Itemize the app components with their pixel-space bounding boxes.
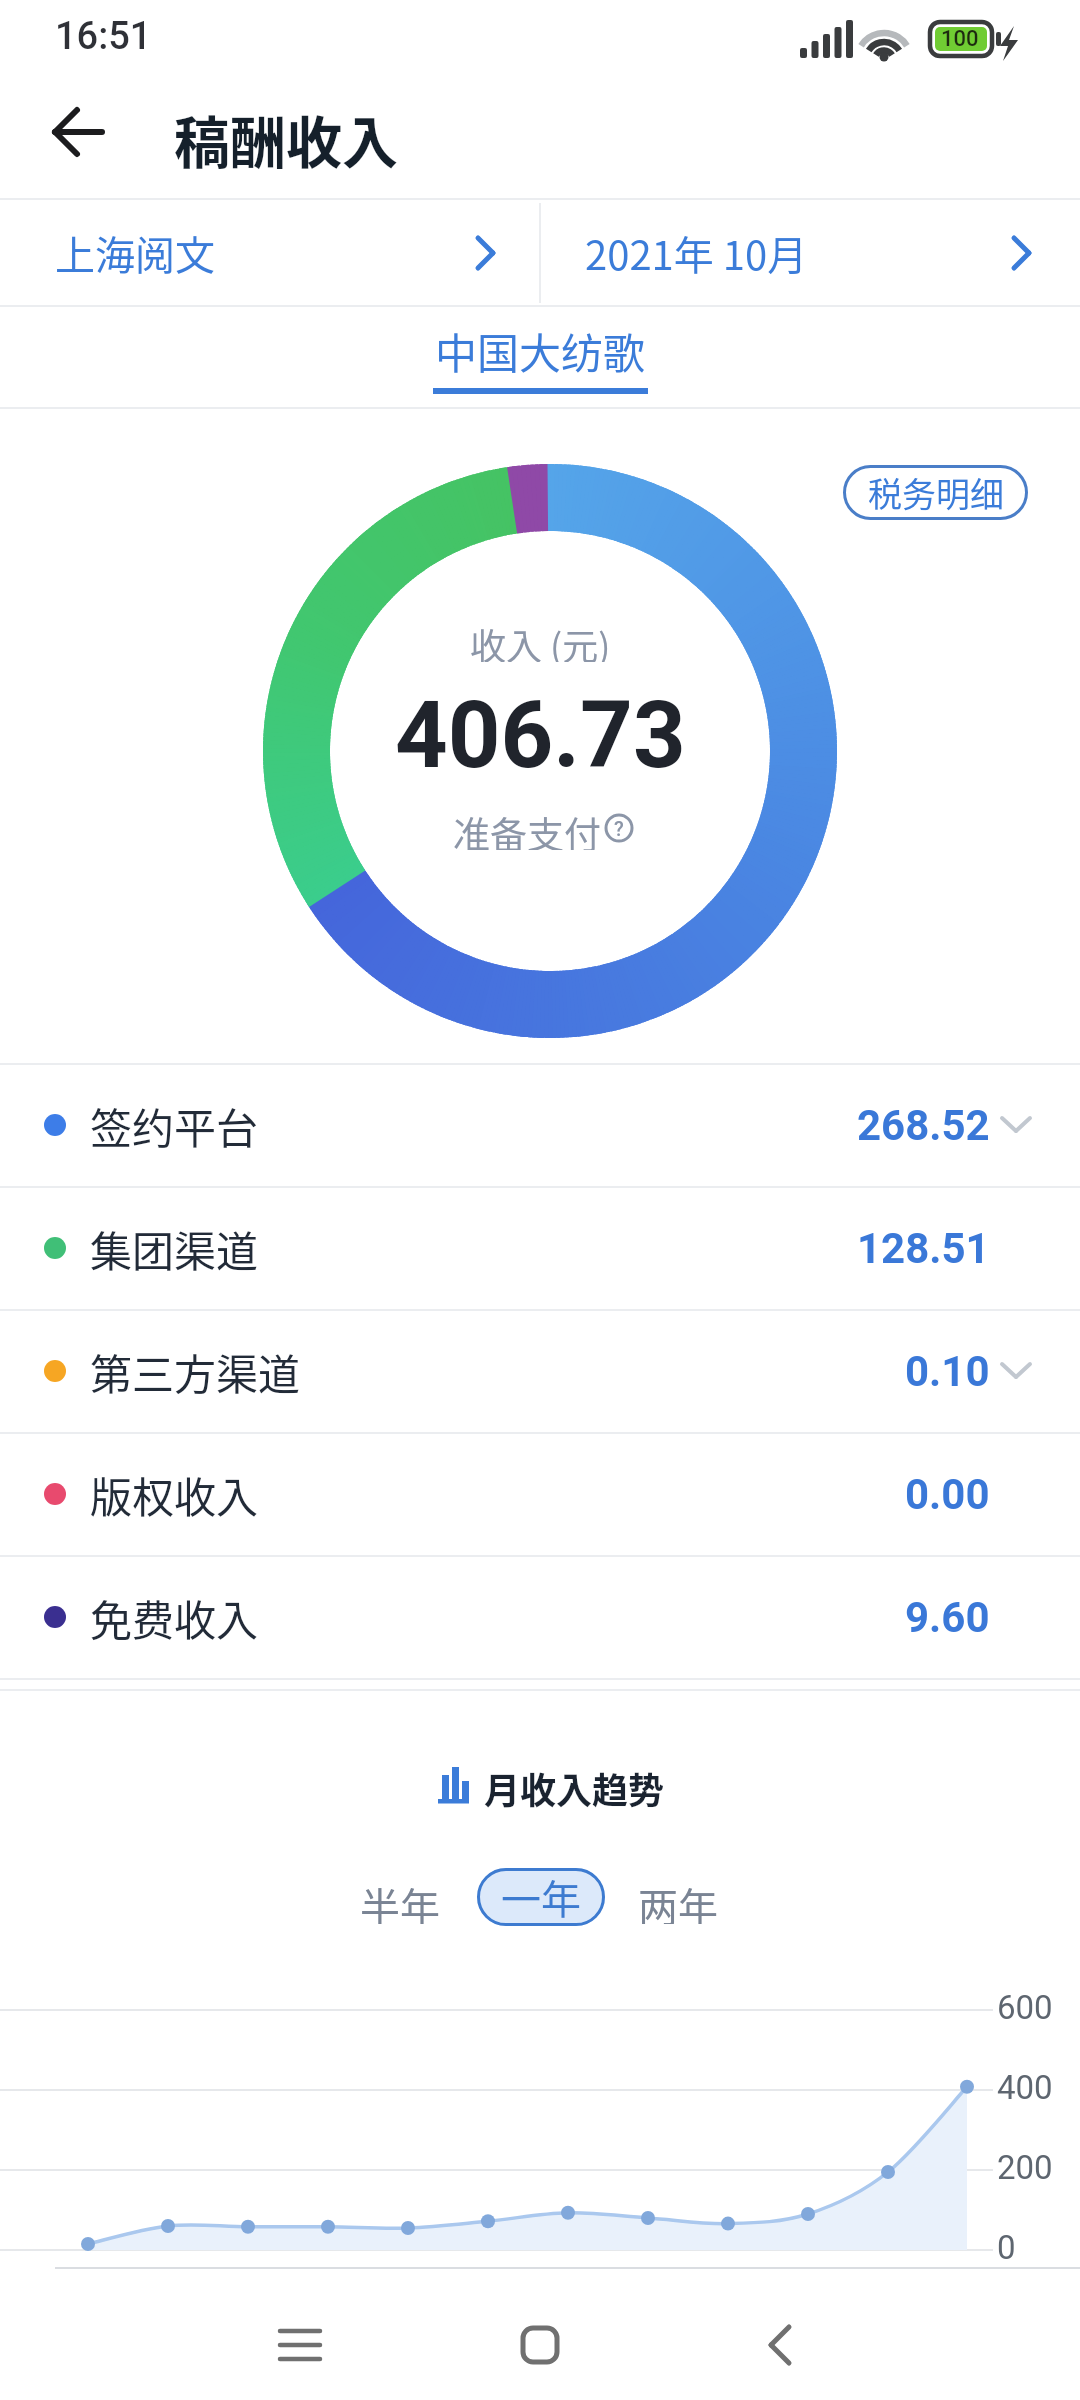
staticText: 第三方渠道 [90, 1341, 301, 1402]
staticText: 准备支付 [453, 806, 601, 850]
staticText: 中国大纺歌 [435, 320, 646, 381]
staticText: 16:51 [55, 14, 152, 59]
staticText: 0 [997, 2228, 1016, 2267]
button[interactable] [0, 1434, 1080, 1555]
staticText: 200 [997, 2148, 1053, 2187]
button[interactable] [480, 2300, 600, 2390]
staticText: 签约平台 [90, 1095, 259, 1156]
staticText: 版权收入 [90, 1464, 259, 1525]
button[interactable] [0, 1065, 1080, 1186]
button[interactable] [0, 1311, 1080, 1432]
staticText: 100 [941, 26, 979, 52]
button[interactable]: 一年 [477, 1868, 605, 1926]
staticText: 268.52 [857, 1101, 990, 1150]
staticText: 收入 (元) [470, 618, 611, 662]
staticText: 稿酬收入 [174, 98, 398, 179]
button[interactable] [540, 201, 1080, 305]
button[interactable]: 两年 [618, 1876, 738, 1924]
staticText: 半年 [360, 1876, 440, 1924]
button[interactable] [0, 1188, 1080, 1309]
staticText: 税务明细 [868, 468, 1004, 517]
staticText: 集团渠道 [90, 1218, 259, 1279]
button[interactable]: 税务明细 [843, 465, 1028, 520]
button[interactable] [380, 307, 700, 407]
button[interactable] [0, 1557, 1080, 1678]
staticText: 2021年 10月 [585, 224, 808, 282]
staticText: 月收入趋势 [484, 1762, 665, 1814]
staticText: ? [614, 817, 624, 840]
staticText: 9.60 [905, 1593, 990, 1642]
staticText: 一年 [501, 1868, 581, 1926]
staticText: 0.00 [905, 1470, 990, 1519]
button[interactable] [240, 2300, 360, 2390]
button[interactable]: 半年 [340, 1876, 460, 1924]
staticText: 0.10 [905, 1347, 990, 1396]
staticText: 406.73 [395, 682, 686, 786]
staticText: 128.51 [857, 1224, 990, 1273]
button[interactable] [50, 105, 110, 159]
staticText: 600 [997, 1988, 1053, 2027]
staticText: 免费收入 [90, 1587, 259, 1648]
staticText: 两年 [638, 1876, 718, 1924]
button[interactable] [720, 2300, 840, 2390]
button[interactable] [0, 201, 540, 305]
staticText: 上海阅文 [55, 224, 215, 282]
staticText: 400 [997, 2068, 1053, 2107]
